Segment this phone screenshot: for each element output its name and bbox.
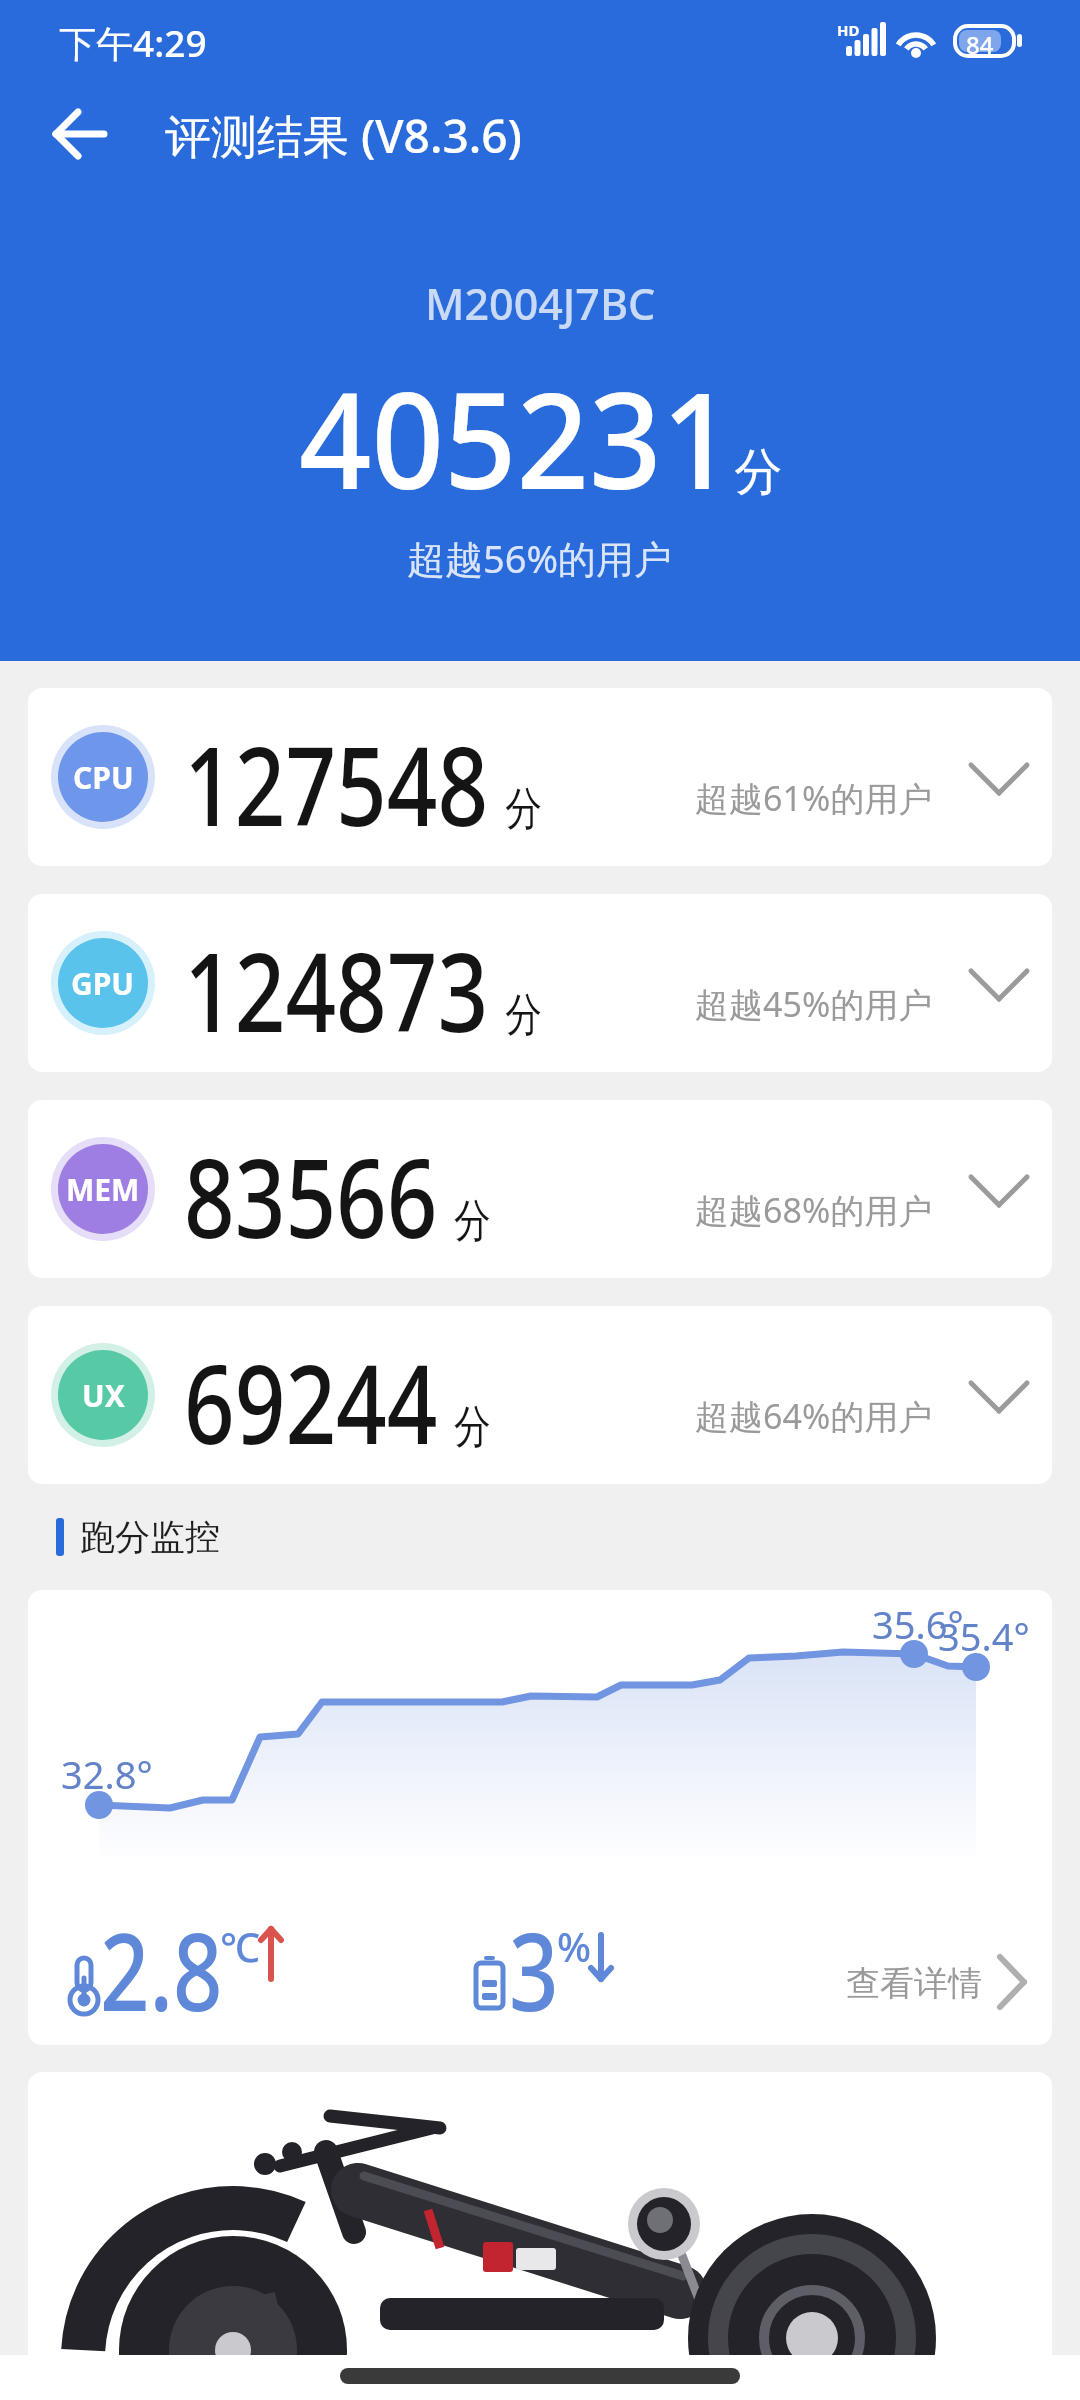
staticText: 84 [966,28,994,61]
staticText: 分 [454,1399,490,1456]
staticText: 查看详情 [846,1962,982,2005]
staticText: 124873 [184,915,489,1063]
staticText: 分 [734,441,782,504]
button[interactable]: MEM [28,1100,1052,1278]
staticText: 超越45%的用户 [695,981,933,1027]
staticText: 分 [454,1193,490,1250]
staticText: CPU [73,757,134,798]
button[interactable]: GPU [28,894,1052,1072]
staticText: 超越68%的用户 [695,1187,933,1233]
button[interactable] [28,2072,1052,2355]
staticText: 评测结果 (V8.3.6) [165,104,522,167]
staticText: 分 [505,987,542,1044]
staticText: 83566 [184,1121,438,1269]
staticText: 69244 [184,1327,438,1475]
staticText: GPU [71,963,135,1004]
staticText: 超越56%的用户 [407,532,673,584]
staticText: 127548 [184,709,489,857]
staticText: 35.4° [938,1610,1030,1662]
staticText: 405231 [299,347,734,528]
button[interactable]: UX [28,1306,1052,1484]
staticText: 分 [505,781,542,838]
staticText: 2.8 [100,1896,222,2043]
button[interactable]: 查看详情 [846,1948,1046,2018]
staticText: ℃ [220,1919,260,1973]
staticText: 32.8° [61,1748,153,1800]
staticText: % [557,1919,592,1973]
staticText: UX [82,1375,125,1416]
staticText: 35.6° [872,1598,964,1650]
staticText: M2004J7BC [425,274,656,333]
button[interactable]: CPU [28,688,1052,866]
button[interactable] [46,102,110,166]
staticText: MEM [66,1169,140,1210]
staticText: 下午4:29 [59,17,207,68]
staticText: 超越64%的用户 [695,1393,933,1439]
staticText: 超越61%的用户 [695,775,933,821]
staticText: HD [837,20,860,40]
staticText: 跑分监控 [80,1515,220,1559]
staticText: 3 [509,1896,559,2043]
